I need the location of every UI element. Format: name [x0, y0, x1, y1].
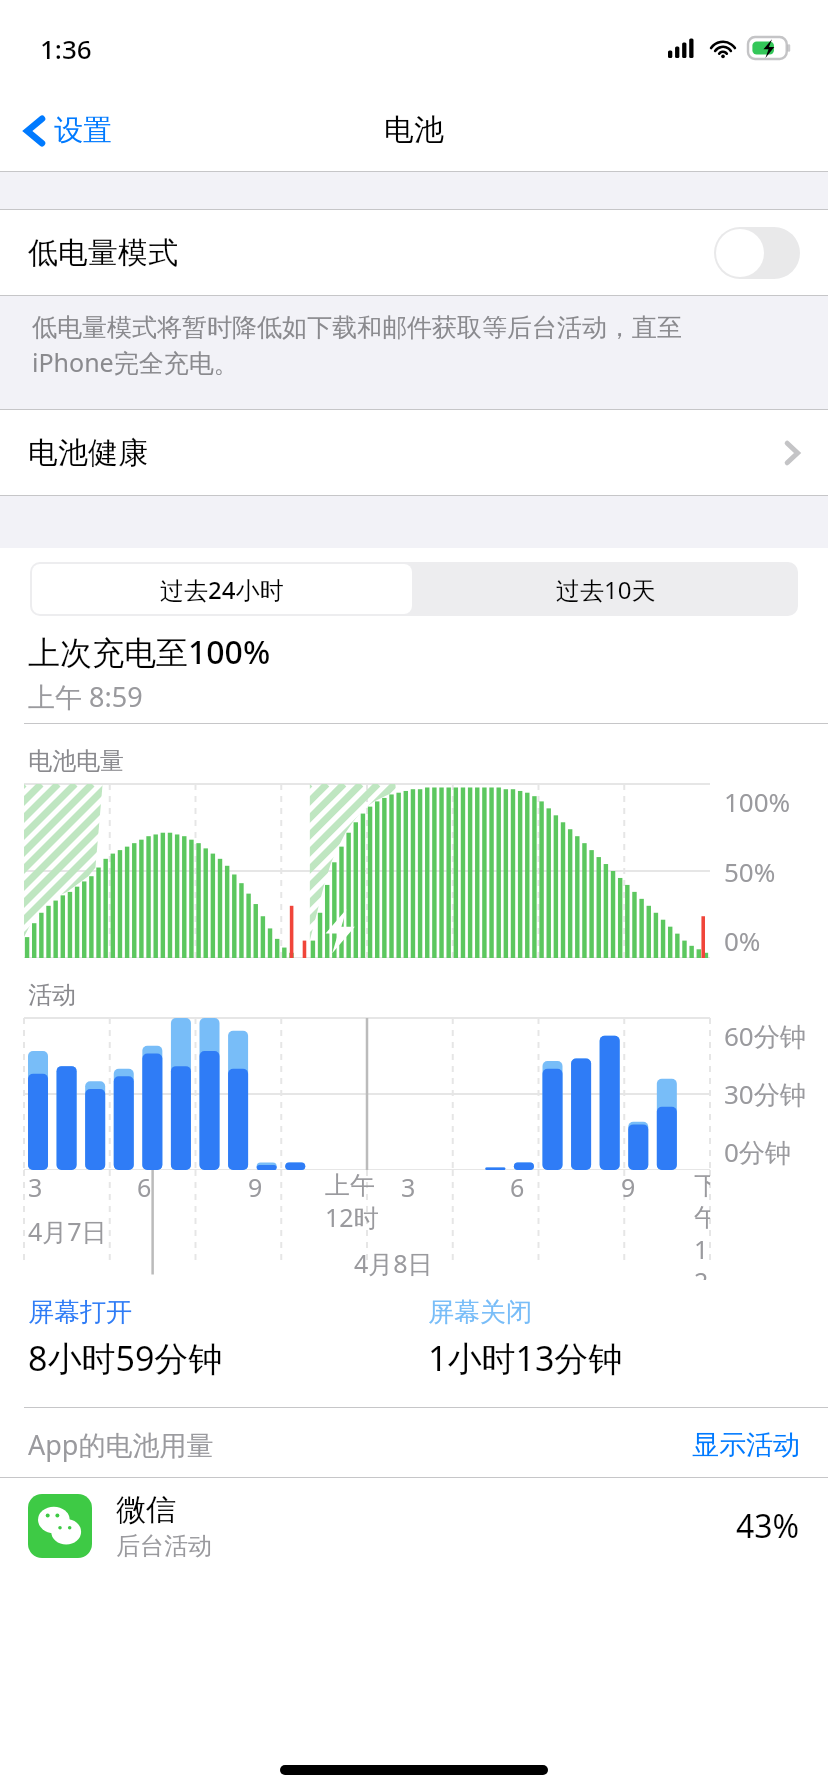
staticText: 低电量模式将暂时降低如下载和邮件获取等后台活动，直至 iPhone完全充电。: [32, 312, 682, 379]
staticText: 9: [621, 1170, 636, 1204]
staticText: 上午 12时: [325, 1170, 379, 1235]
button[interactable]: 过去24小时: [32, 564, 412, 614]
staticText: 电池电量: [28, 746, 124, 776]
staticText: 设置: [54, 112, 112, 149]
button[interactable]: 过去10天: [414, 562, 798, 616]
staticText: 过去24小时: [160, 573, 284, 606]
staticText: 过去10天: [556, 573, 656, 606]
staticText: 100%: [724, 784, 791, 819]
staticText: 显示活动: [692, 1428, 800, 1462]
button[interactable]: 低电量模式: [0, 210, 828, 295]
button[interactable]: Low Power Mode toggle: [714, 227, 800, 279]
staticText: App的电池用量: [28, 1426, 214, 1463]
staticText: 3: [401, 1170, 416, 1204]
staticText: 43%: [736, 1504, 800, 1548]
staticText: 屏幕关闭: [428, 1296, 532, 1329]
staticText: 4月7日: [28, 1214, 107, 1248]
staticText: 1:36: [40, 31, 92, 66]
staticText: 下午 12时: [694, 1170, 710, 1280]
staticText: 0%: [724, 923, 761, 958]
staticText: 8小时59分钟: [28, 1335, 223, 1381]
staticText: 低电量模式: [28, 234, 178, 272]
button[interactable]: 微信: [0, 1478, 828, 1574]
staticText: 50%: [724, 854, 776, 889]
staticText: 0分钟: [724, 1134, 791, 1170]
staticText: 上次充电至100%: [28, 630, 271, 674]
staticText: 活动: [28, 980, 76, 1010]
staticText: 电池: [384, 111, 444, 149]
staticText: 30分钟: [724, 1076, 806, 1112]
button[interactable]: 电池健康: [0, 410, 828, 495]
staticText: 后台活动: [116, 1531, 212, 1561]
staticText: 屏幕打开: [28, 1296, 132, 1329]
staticText: 9: [248, 1170, 263, 1204]
staticText: 电池健康: [28, 434, 148, 472]
staticText: 微信: [116, 1491, 176, 1529]
staticText: 6: [510, 1170, 525, 1204]
staticText: 60分钟: [724, 1018, 806, 1054]
staticText: 1小时13分钟: [428, 1335, 623, 1381]
button[interactable]: 显示活动: [692, 1428, 800, 1462]
staticText: 3: [28, 1170, 43, 1204]
staticText: 6: [137, 1170, 152, 1204]
button[interactable]: 设置: [18, 106, 118, 155]
staticText: 上午 8:59: [28, 678, 143, 715]
staticText: 4月8日: [354, 1246, 433, 1280]
